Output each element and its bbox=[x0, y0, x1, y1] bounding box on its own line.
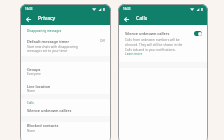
staticText: Calls from unknown numbers will be bbox=[125, 38, 180, 42]
staticText: 16:33 bbox=[123, 7, 131, 11]
button[interactable]: Silence unknown callers bbox=[20, 106, 111, 115]
staticText: Everyone bbox=[27, 72, 41, 76]
staticText: silenced. They will still be shown in th… bbox=[125, 43, 183, 47]
button[interactable]: Silence unknown callers bbox=[118, 24, 208, 63]
staticText: messages set to your timer bbox=[27, 49, 68, 53]
staticText: Disappearing messages bbox=[27, 29, 62, 33]
button[interactable]: Live location bbox=[20, 81, 111, 94]
staticText: Calls bbox=[136, 15, 148, 22]
staticText: Silence unknown callers bbox=[125, 31, 170, 36]
staticText: Groups bbox=[27, 67, 41, 72]
staticText: Blocked contacts bbox=[27, 123, 59, 128]
staticText: None bbox=[27, 89, 36, 93]
staticText: Calls bbox=[27, 101, 34, 105]
button[interactable]: Default message timer bbox=[20, 34, 111, 57]
staticText: Privacy bbox=[38, 15, 56, 22]
button[interactable]: Back bbox=[24, 15, 32, 23]
staticText: Start new chats with disappearing bbox=[27, 45, 78, 49]
staticText: Off bbox=[100, 39, 105, 43]
staticText: Live location bbox=[27, 84, 51, 89]
button[interactable]: Back bbox=[122, 15, 130, 23]
staticText: Learn more bbox=[125, 52, 143, 56]
staticText: Default message timer bbox=[27, 39, 70, 44]
staticText: None bbox=[27, 129, 36, 133]
button[interactable]: Blocked contacts bbox=[20, 122, 111, 135]
button[interactable]: Silence unknown callers toggle bbox=[194, 31, 202, 36]
staticText: Silence unknown callers bbox=[27, 108, 72, 113]
button[interactable]: Groups bbox=[20, 64, 111, 77]
staticText: 16:33 bbox=[25, 7, 33, 11]
staticText: Calls tab and in your notifications. bbox=[125, 48, 176, 52]
